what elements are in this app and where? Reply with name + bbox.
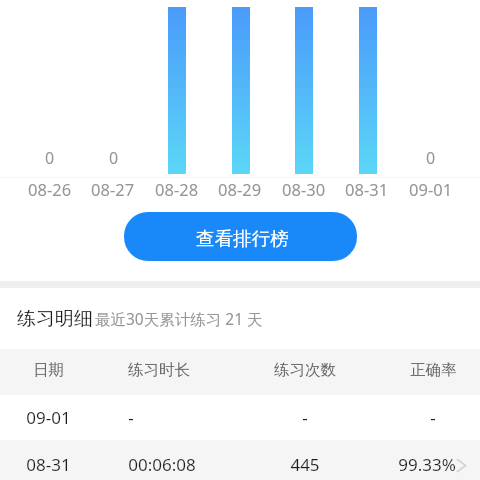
button[interactable]: 查看排行榜 [124, 212, 357, 261]
button[interactable]: 09-01 [0, 395, 480, 440]
staticText: 445 [290, 453, 320, 476]
staticText: 练习明细 [17, 307, 93, 331]
staticText: 99.33% [398, 453, 456, 476]
staticText: 最近30天累计练习 21 天 [95, 308, 263, 329]
staticText: 09-01 [26, 406, 71, 429]
staticText: 0 [426, 147, 436, 169]
staticText: 00:06:08 [128, 453, 196, 476]
staticText: 08-29 [218, 178, 262, 200]
staticText: 0 [45, 147, 55, 169]
staticText: 09-01 [409, 178, 453, 200]
staticText: 08-27 [91, 178, 135, 200]
staticText: 日期 [33, 360, 64, 380]
button[interactable]: 08-31 [0, 440, 480, 480]
staticText: - [128, 406, 134, 429]
staticText: 08-26 [28, 178, 72, 200]
staticText: 正确率 [410, 360, 457, 380]
staticText: 08-30 [282, 178, 326, 200]
staticText: - [302, 406, 308, 429]
staticText: 0 [109, 147, 119, 169]
staticText: 08-31 [26, 453, 71, 476]
staticText: - [430, 406, 436, 429]
staticText: 练习次数 [274, 360, 336, 380]
staticText: 练习时长 [128, 360, 190, 380]
staticText: 查看排行榜 [196, 227, 289, 250]
staticText: 08-31 [345, 178, 389, 200]
staticText: 08-28 [155, 178, 199, 200]
